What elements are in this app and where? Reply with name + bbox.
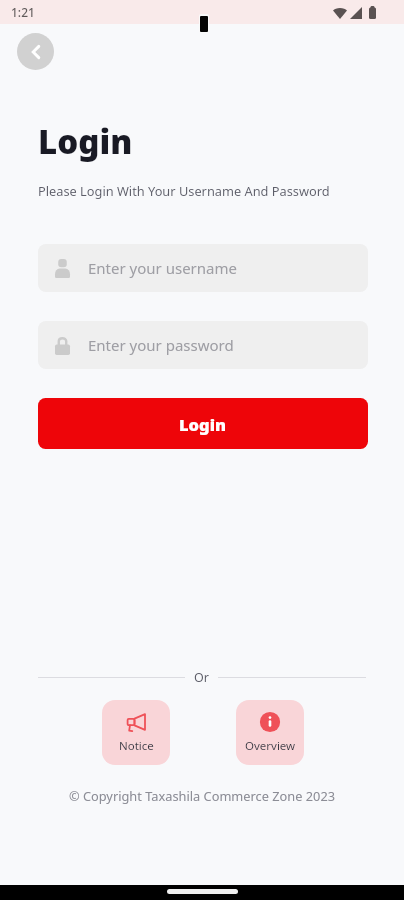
staticText: Notice	[119, 738, 154, 754]
button[interactable]: Enter your password	[38, 321, 368, 369]
staticText: Enter your username	[88, 258, 237, 278]
staticText: Please Login With Your Username And Pass…	[38, 182, 330, 199]
button[interactable]: Overview	[236, 700, 304, 765]
button[interactable]: Notice	[102, 700, 170, 765]
staticText: 1:21	[11, 4, 35, 20]
staticText: © Copyright Taxashila Commerce Zone 2023	[0, 787, 404, 804]
button[interactable]: Login	[38, 398, 368, 449]
staticText: Or	[194, 669, 209, 686]
staticText: Overview	[245, 738, 296, 754]
staticText: Login	[38, 119, 133, 164]
button[interactable]: Back	[17, 33, 54, 70]
staticText: Login	[179, 413, 227, 435]
button[interactable]: Enter your username	[38, 244, 368, 292]
staticText: Enter your password	[88, 335, 234, 355]
